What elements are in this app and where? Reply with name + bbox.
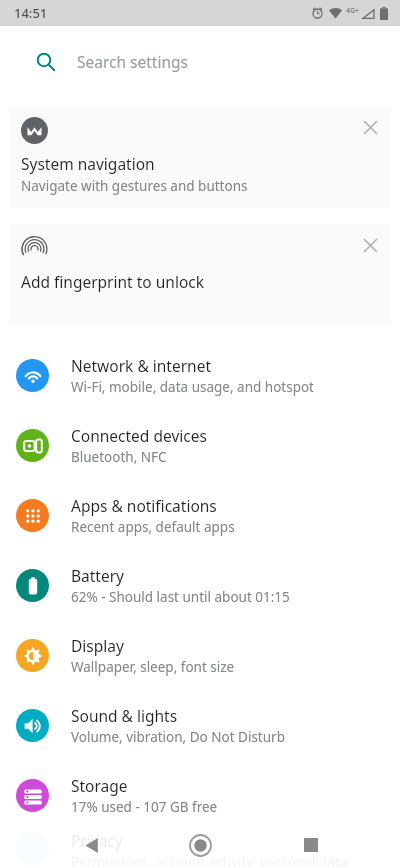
staticText: 14:51 bbox=[14, 4, 48, 22]
staticText: 4G+ bbox=[346, 6, 360, 16]
button[interactable]: Apps & notifications bbox=[0, 480, 400, 550]
staticText: Add fingerprint to unlock bbox=[21, 271, 204, 292]
button[interactable]: Back bbox=[74, 828, 108, 862]
button[interactable]: Display bbox=[0, 620, 400, 690]
staticText: 62% - Should last until about 01:15 bbox=[71, 588, 290, 606]
staticText: Sound & lights bbox=[71, 705, 178, 726]
staticText: System navigation bbox=[21, 153, 155, 174]
staticText: Search settings bbox=[77, 51, 188, 72]
staticText: Wi-Fi, mobile, data usage, and hotspot bbox=[71, 378, 314, 396]
staticText: Recent apps, default apps bbox=[71, 518, 235, 536]
staticText: Battery bbox=[71, 565, 125, 586]
button[interactable]: Storage bbox=[0, 760, 400, 830]
button[interactable]: Network & internet bbox=[0, 340, 400, 410]
staticText: Bluetooth, NFC bbox=[71, 448, 167, 466]
button[interactable]: System navigation bbox=[9, 106, 391, 208]
staticText: Permissions, account activity, personal … bbox=[71, 853, 348, 867]
staticText: Privacy bbox=[71, 830, 123, 851]
staticText: Storage bbox=[71, 775, 128, 796]
staticText: Display bbox=[71, 635, 124, 656]
button[interactable]: Home bbox=[182, 827, 218, 863]
staticText: Apps & notifications bbox=[71, 495, 217, 516]
button[interactable]: Dismiss bbox=[355, 230, 385, 260]
button[interactable]: Battery bbox=[0, 550, 400, 620]
staticText: Wallpaper, sleep, font size bbox=[71, 658, 235, 676]
staticText: Navigate with gestures and buttons bbox=[21, 177, 248, 195]
staticText: 17% used - 107 GB free bbox=[71, 798, 218, 816]
button[interactable]: Add fingerprint to unlock bbox=[9, 224, 391, 326]
staticText: Network & internet bbox=[71, 355, 211, 376]
staticText: Volume, vibration, Do Not Disturb bbox=[71, 728, 285, 746]
button[interactable]: Dismiss bbox=[355, 112, 385, 142]
button[interactable]: Recent apps bbox=[294, 828, 328, 862]
button[interactable]: Sound & lights bbox=[0, 690, 400, 760]
button[interactable]: Connected devices bbox=[0, 410, 400, 480]
staticText: Connected devices bbox=[71, 425, 207, 446]
button[interactable]: Search settings bbox=[14, 38, 386, 84]
button[interactable]: Privacy bbox=[0, 830, 400, 867]
